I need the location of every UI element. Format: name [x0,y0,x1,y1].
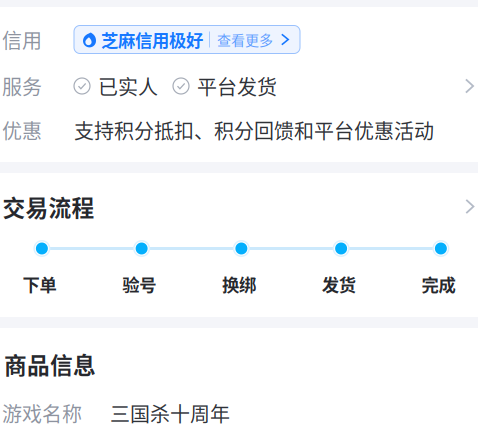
staticText: 支持积分抵扣、积分回馈和平台优惠活动 [74,115,434,144]
staticText: 发货 [322,271,356,297]
button[interactable]: 芝麻信用极好 [74,25,300,53]
staticText: 优惠 [2,115,42,144]
staticText: 芝麻信用极好 [101,27,203,52]
staticText: 交易流程 [2,190,94,223]
staticText: 平台发货 [197,71,277,100]
staticText: 三国杀十周年 [110,398,230,427]
staticText: 商品信息 [4,347,96,380]
staticText: 查看更多 [217,29,273,50]
button[interactable]: 交易流程 [0,173,476,240]
staticText: 下单 [22,271,56,297]
staticText: 完成 [421,271,455,297]
button[interactable]: 服务 [0,72,478,100]
staticText: 换绑 [222,271,256,297]
staticText: 游戏名称 [2,398,82,427]
staticText: 信用 [2,25,42,54]
staticText: 服务 [2,71,42,100]
staticText: 已实人 [98,71,158,100]
staticText: 验号 [122,271,156,297]
